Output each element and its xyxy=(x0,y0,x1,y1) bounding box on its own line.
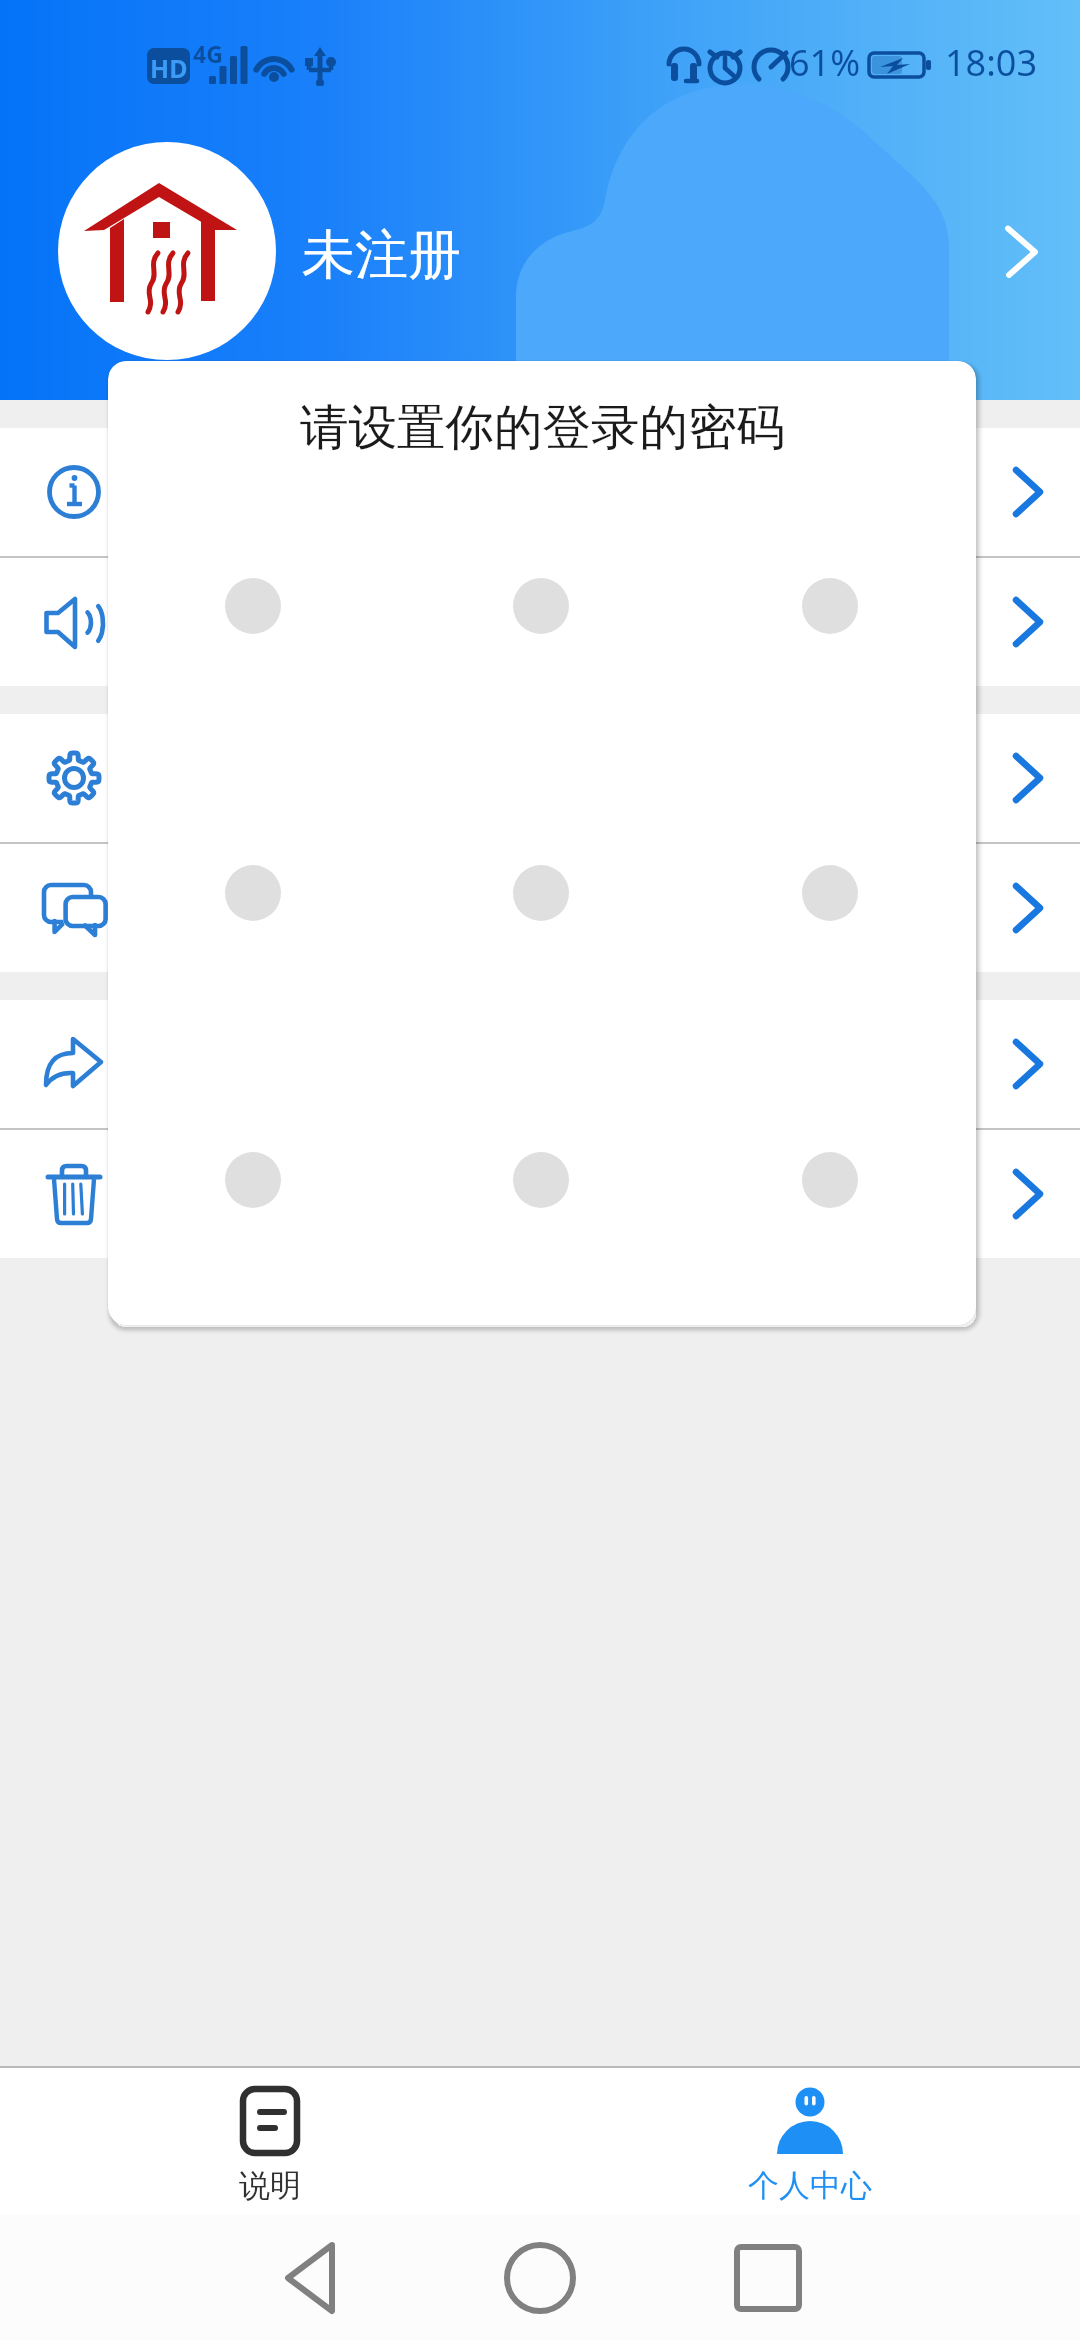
button[interactable]: Pattern dot 2 xyxy=(499,564,583,648)
button[interactable]: Open profile xyxy=(975,200,1080,305)
button[interactable]: 说明 xyxy=(0,2068,540,2215)
button[interactable]: 声音设置 xyxy=(0,558,1080,686)
button[interactable]: Recent apps xyxy=(708,2215,828,2340)
button[interactable]: Pattern dot 1 xyxy=(211,564,295,648)
staticText: 未注册 xyxy=(302,222,461,289)
staticText: 说明 xyxy=(239,2166,301,2205)
button[interactable]: Pattern dot 4 xyxy=(211,851,295,935)
button[interactable]: Pattern dot 3 xyxy=(788,564,872,648)
button[interactable]: Pattern dot 6 xyxy=(788,851,872,935)
staticText: 61% xyxy=(789,38,861,87)
button[interactable]: 分享应用 xyxy=(0,1000,1080,1128)
button[interactable]: 意见反馈 xyxy=(0,844,1080,972)
staticText: 请设置你的登录的密码 xyxy=(300,397,785,458)
button[interactable]: 关于我们 xyxy=(0,428,1080,556)
button[interactable]: Pattern dot 9 xyxy=(788,1138,872,1222)
staticText: 4G xyxy=(193,38,223,69)
button[interactable]: Back xyxy=(250,2215,370,2340)
staticText: 个人中心 xyxy=(748,2166,872,2205)
button[interactable]: Pattern dot 7 xyxy=(211,1138,295,1222)
button[interactable]: 个人中心 xyxy=(540,2068,1080,2215)
button[interactable]: Pattern dot 8 xyxy=(499,1138,583,1222)
button[interactable]: Avatar xyxy=(58,142,276,360)
staticText: 18:03 xyxy=(945,38,1038,87)
button[interactable]: Pattern dot 5 xyxy=(499,851,583,935)
staticText: HD xyxy=(150,51,188,85)
button[interactable]: 系统设置 xyxy=(0,714,1080,842)
button[interactable]: 清除缓存 xyxy=(0,1130,1080,1258)
button[interactable]: Home xyxy=(480,2215,600,2340)
